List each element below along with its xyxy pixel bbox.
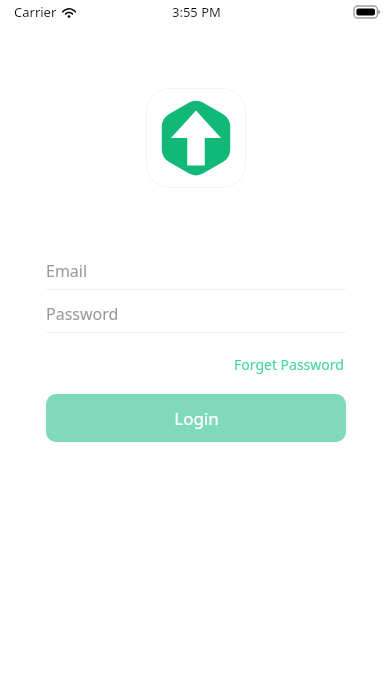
button[interactable]: Login: [46, 394, 346, 442]
button[interactable]: Forget Password: [232, 353, 346, 376]
staticText: Password: [46, 303, 119, 325]
button[interactable]: Email: [46, 253, 346, 290]
staticText: Email: [46, 260, 88, 282]
staticText: Carrier: [14, 3, 57, 21]
staticText: 3:55 PM: [172, 3, 221, 21]
button[interactable]: Password: [46, 296, 346, 333]
staticText: Forget Password: [234, 355, 344, 374]
staticText: Login: [174, 407, 219, 430]
